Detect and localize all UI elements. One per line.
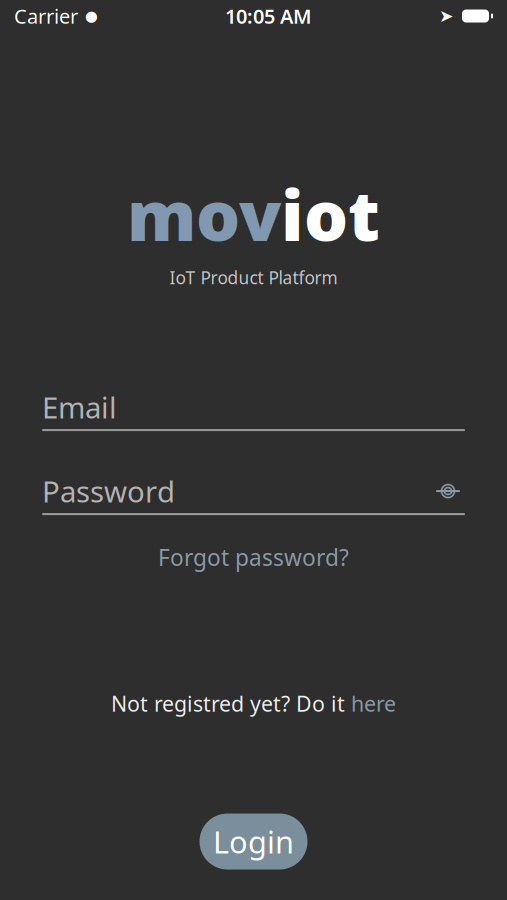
staticText: Password — [42, 472, 175, 511]
button[interactable]: Login — [199, 813, 307, 869]
staticText: ➤ — [439, 6, 454, 26]
staticText: Email — [42, 388, 117, 427]
button[interactable]: Not registred yet? Do it — [99, 683, 408, 723]
staticText: Forgot password? — [158, 542, 349, 572]
staticText: 10:05 AM — [225, 3, 312, 29]
staticText: IoT Product Platform — [169, 266, 337, 289]
staticText: mov — [127, 168, 281, 260]
staticText: Not registred yet? Do it — [111, 689, 351, 717]
button[interactable]: Forgot password? — [144, 535, 363, 579]
staticText: here — [351, 689, 396, 717]
staticText: iot — [281, 168, 380, 260]
staticText: Carrier — [14, 3, 78, 29]
staticText: ● — [85, 8, 98, 24]
staticText: Login — [213, 821, 294, 862]
button[interactable]: Show password — [431, 474, 465, 508]
